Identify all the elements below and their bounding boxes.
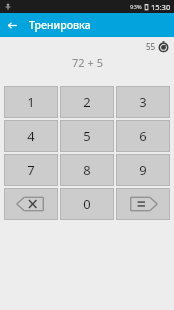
- staticText: 6: [139, 127, 147, 145]
- staticText: 5: [83, 127, 91, 145]
- staticText: 4: [27, 127, 35, 145]
- staticText: 93%: [130, 3, 142, 11]
- button[interactable]: 7: [4, 154, 58, 186]
- button[interactable]: 2: [60, 86, 114, 118]
- other: Timer: [158, 41, 169, 52]
- staticText: 1: [27, 93, 35, 111]
- staticText: 8: [83, 161, 91, 179]
- button[interactable]: 6: [116, 120, 170, 152]
- staticText: Тренировка: [29, 18, 91, 32]
- staticText: 9: [139, 161, 147, 179]
- staticText: 55: [146, 41, 156, 52]
- button[interactable]: 1: [4, 86, 58, 118]
- button[interactable]: 9: [116, 154, 170, 186]
- staticText: 15:30: [151, 2, 171, 12]
- staticText: 2: [83, 93, 91, 111]
- button[interactable]: 0: [60, 188, 114, 220]
- button[interactable]: Back: [0, 13, 24, 37]
- staticText: 7: [27, 161, 35, 179]
- button[interactable]: Clear: [4, 188, 58, 220]
- button[interactable]: Equals: [116, 188, 170, 220]
- button[interactable]: 3: [116, 86, 170, 118]
- staticText: 72 + 5: [72, 55, 103, 70]
- button[interactable]: 5: [60, 120, 114, 152]
- button[interactable]: 4: [4, 120, 58, 152]
- staticText: 3: [139, 93, 147, 111]
- staticText: 0: [83, 195, 91, 213]
- button[interactable]: 8: [60, 154, 114, 186]
